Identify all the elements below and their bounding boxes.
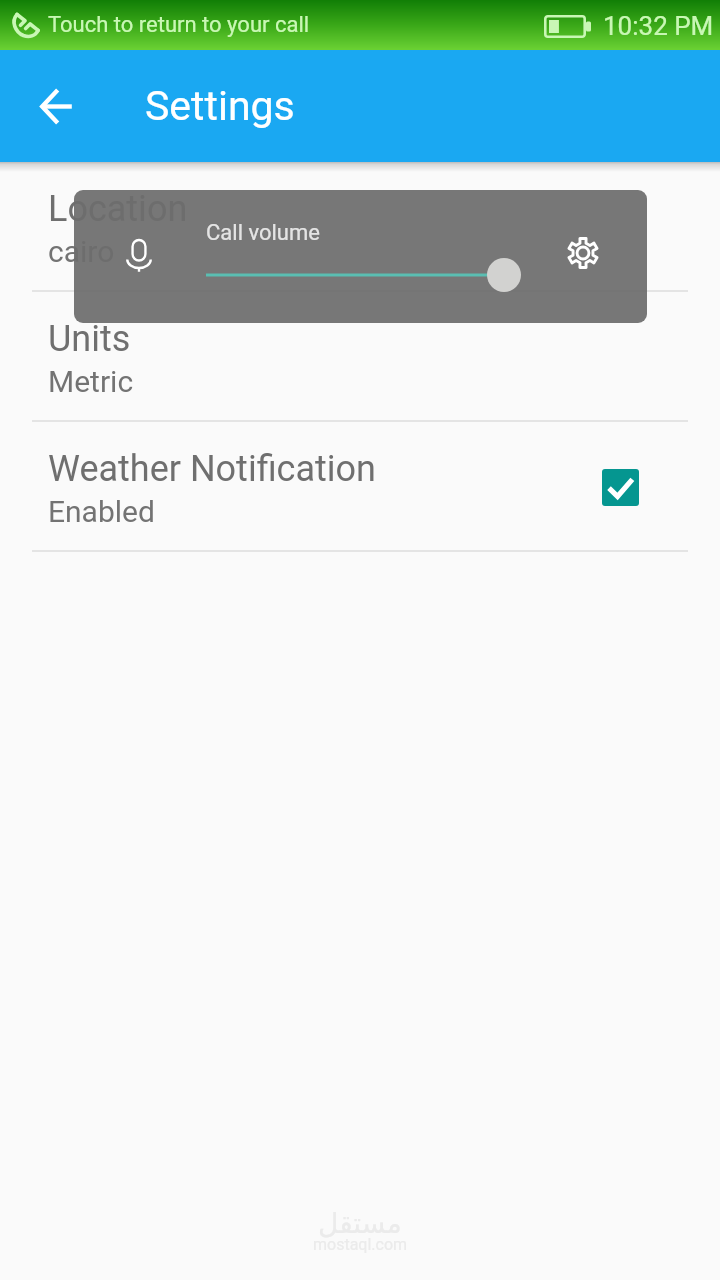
staticText: Touch to return to your call <box>48 12 310 38</box>
staticText: 10:32 PM <box>603 11 714 41</box>
staticText: Enabled <box>48 494 155 529</box>
button[interactable]: Mute microphone <box>74 190 647 323</box>
button[interactable]: Weather Notification <box>0 422 720 550</box>
staticText: Units <box>48 318 131 360</box>
button[interactable]: Touch to return to your call <box>0 0 720 50</box>
staticText: Location <box>48 188 188 230</box>
button[interactable]: Mute microphone <box>115 231 163 279</box>
button[interactable]: Weather notification enabled <box>602 469 639 506</box>
button[interactable]: Call settings <box>559 229 607 277</box>
button[interactable]: Location <box>0 162 720 290</box>
button[interactable]: Units <box>0 292 720 420</box>
staticText: مستقل <box>318 1207 402 1240</box>
button[interactable]: Back <box>21 70 93 142</box>
staticText: Weather Notification <box>48 448 376 490</box>
staticText: Call volume <box>206 220 320 246</box>
staticText: Settings <box>145 82 295 130</box>
staticText: cairo <box>48 234 115 269</box>
staticText: Metric <box>48 364 134 399</box>
staticText: mostaql.com <box>313 1235 408 1254</box>
